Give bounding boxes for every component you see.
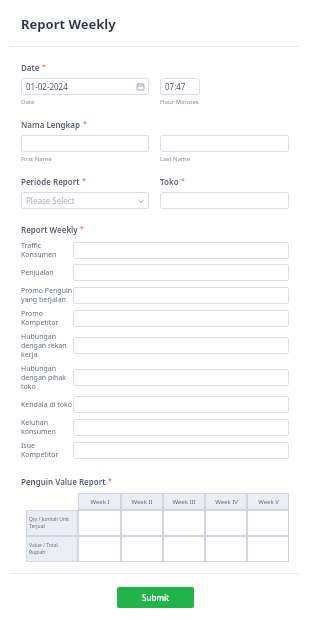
button[interactable] — [73, 419, 289, 436]
staticText: Traffic Konsumen — [21, 241, 73, 259]
staticText: * — [82, 176, 86, 186]
staticText: Hour Minutes — [160, 98, 199, 106]
staticText: Penjualan — [21, 268, 73, 278]
button[interactable] — [73, 264, 289, 281]
staticText: Report Weekly — [21, 224, 78, 235]
staticText: Toko — [160, 176, 179, 187]
button[interactable] — [205, 510, 247, 536]
button[interactable]: Please Select — [21, 192, 149, 209]
button[interactable] — [73, 369, 289, 386]
staticText: * — [83, 119, 87, 129]
button[interactable]: Submit — [117, 587, 194, 608]
staticText: Promo Penguin yang berjalan — [21, 286, 73, 304]
staticText: Hubungan dengan pihak toko — [21, 364, 73, 391]
staticText: Submit — [142, 592, 170, 603]
button[interactable] — [73, 287, 289, 304]
staticText: Hubungan dengan rekan kerja — [21, 332, 73, 359]
button[interactable] — [121, 510, 163, 536]
staticText: Keluhan konsumen — [21, 418, 73, 436]
staticText: Periode Report — [21, 176, 80, 187]
staticText: Report Weekly — [21, 15, 116, 33]
staticText: Last Name — [160, 155, 191, 163]
button[interactable] — [247, 510, 289, 536]
button[interactable] — [73, 337, 289, 354]
button[interactable] — [21, 135, 149, 152]
staticText: Nama Lengkap — [21, 119, 81, 130]
button[interactable] — [73, 396, 289, 413]
staticText: Please Select — [26, 195, 75, 206]
staticText: * — [42, 62, 46, 72]
staticText: * — [181, 176, 185, 186]
staticText: Week V — [258, 498, 279, 506]
button[interactable] — [78, 536, 121, 562]
staticText: Kendala di toko — [21, 400, 73, 410]
staticText: Value / Total Rupiah — [29, 542, 75, 556]
staticText: Qty / Jumlah Unit Terjual — [29, 516, 70, 530]
button[interactable] — [160, 192, 289, 209]
staticText: Promo Kompetitor — [21, 309, 73, 327]
staticText: * — [108, 476, 112, 486]
staticText: Penguin Value Report — [21, 476, 106, 487]
button[interactable] — [163, 510, 205, 536]
button[interactable] — [73, 310, 289, 327]
staticText: Date — [21, 62, 40, 73]
staticText: Date — [21, 98, 160, 106]
staticText: Week II — [131, 498, 153, 506]
staticText: * — [80, 224, 84, 234]
staticText: Week IV — [215, 498, 238, 506]
button[interactable]: 07:47 — [160, 78, 200, 95]
button[interactable] — [121, 536, 163, 562]
staticText: Isue Kompetitor — [21, 441, 73, 459]
staticText: 01-02-2024 — [26, 81, 68, 92]
staticText: First Name — [21, 155, 160, 163]
staticText: Week III — [172, 498, 196, 506]
staticText: Week I — [90, 498, 110, 506]
button[interactable] — [163, 536, 205, 562]
staticText: 07:47 — [165, 81, 186, 92]
button[interactable] — [73, 442, 289, 459]
button[interactable] — [73, 242, 289, 259]
button[interactable] — [205, 536, 247, 562]
button[interactable]: 01-02-2024 — [21, 78, 149, 95]
button[interactable] — [78, 510, 121, 536]
button[interactable] — [160, 135, 289, 152]
button[interactable] — [247, 536, 289, 562]
